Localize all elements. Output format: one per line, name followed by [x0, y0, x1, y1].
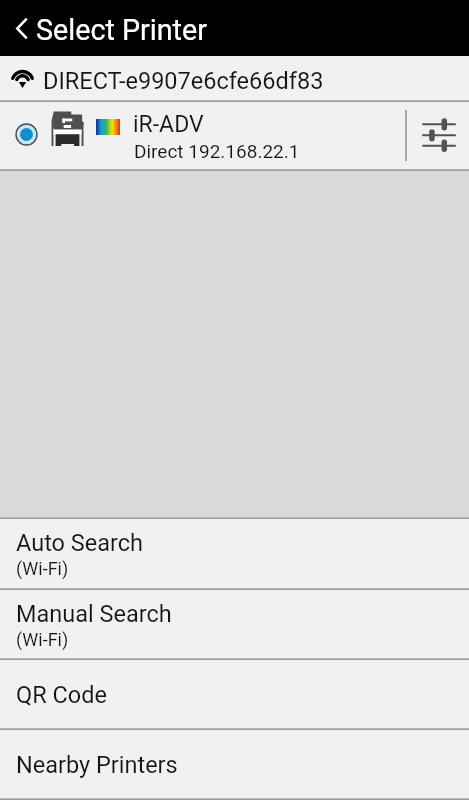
- button[interactable]: Auto Search: [0, 519, 469, 588]
- staticText: (Wi-Fi): [16, 558, 69, 579]
- staticText: Direct 192.168.22.1: [134, 140, 300, 162]
- button[interactable]: Printer settings: [407, 102, 469, 169]
- staticText: Select Printer: [36, 13, 207, 47]
- staticText: Auto Search: [16, 529, 144, 557]
- staticText: iR-ADV: [133, 111, 204, 138]
- staticText: QR Code: [16, 681, 107, 709]
- button[interactable]: [0, 102, 405, 169]
- staticText: Manual Search: [16, 600, 172, 628]
- button[interactable]: DIRECT-e9907e6cfe66df83: [0, 56, 469, 100]
- staticText: DIRECT-e9907e6cfe66df83: [43, 67, 324, 95]
- button[interactable]: Manual Search: [0, 590, 469, 658]
- staticText: Nearby Printers: [16, 751, 178, 779]
- button[interactable]: Nearby Printers: [0, 730, 469, 798]
- staticText: (Wi-Fi): [16, 629, 69, 650]
- button[interactable]: Back: [0, 0, 38, 56]
- button[interactable]: QR Code: [0, 660, 469, 728]
